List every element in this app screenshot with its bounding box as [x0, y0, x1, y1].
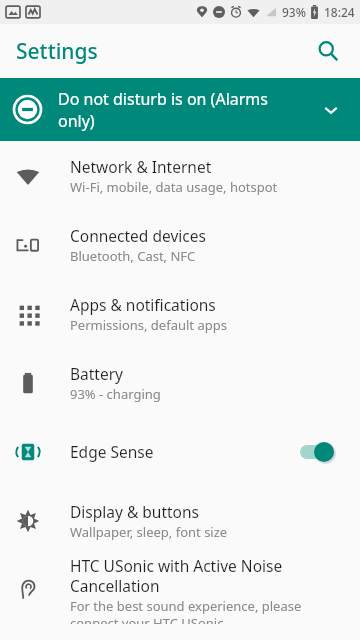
button[interactable]: Connected devices: [0, 210, 360, 279]
button[interactable]: Network & Internet: [0, 141, 360, 210]
button[interactable]: Edge Sense: [0, 417, 360, 486]
staticText: 93%: [282, 4, 306, 20]
staticText: Network & Internet: [70, 156, 212, 177]
button[interactable]: Edge Sense toggle: [300, 437, 346, 467]
staticText: Wi-Fi, mobile, data usage, hotspot: [70, 178, 278, 196]
staticText: Apps & notifications: [70, 294, 216, 315]
staticText: Edge Sense: [70, 441, 154, 462]
button[interactable]: Display & buttons: [0, 486, 360, 555]
button[interactable]: Battery: [0, 348, 360, 417]
button[interactable]: Do not disturb is on (Alarms only): [0, 78, 360, 141]
button[interactable]: Apps & notifications: [0, 279, 360, 348]
staticText: 93% - charging: [70, 385, 161, 403]
button[interactable]: HTC USonic with Active Noise Cancellatio…: [0, 555, 360, 624]
staticText: For the best sound experience, please co…: [70, 597, 346, 624]
staticText: Permissions, default apps: [70, 316, 227, 334]
staticText: 18:24: [324, 4, 355, 20]
staticText: HTC USonic with Active Noise Cancellatio…: [70, 555, 346, 596]
staticText: Settings: [16, 37, 98, 66]
staticText: Wallpaper, sleep, font size: [70, 523, 228, 541]
button[interactable]: Search: [306, 29, 350, 73]
button[interactable]: Expand: [316, 95, 346, 125]
staticText: Battery: [70, 363, 124, 384]
staticText: Connected devices: [70, 225, 206, 246]
staticText: Display & buttons: [70, 501, 199, 522]
staticText: Bluetooth, Cast, NFC: [70, 247, 196, 265]
staticText: Do not disturb is on (Alarms only): [58, 88, 308, 132]
